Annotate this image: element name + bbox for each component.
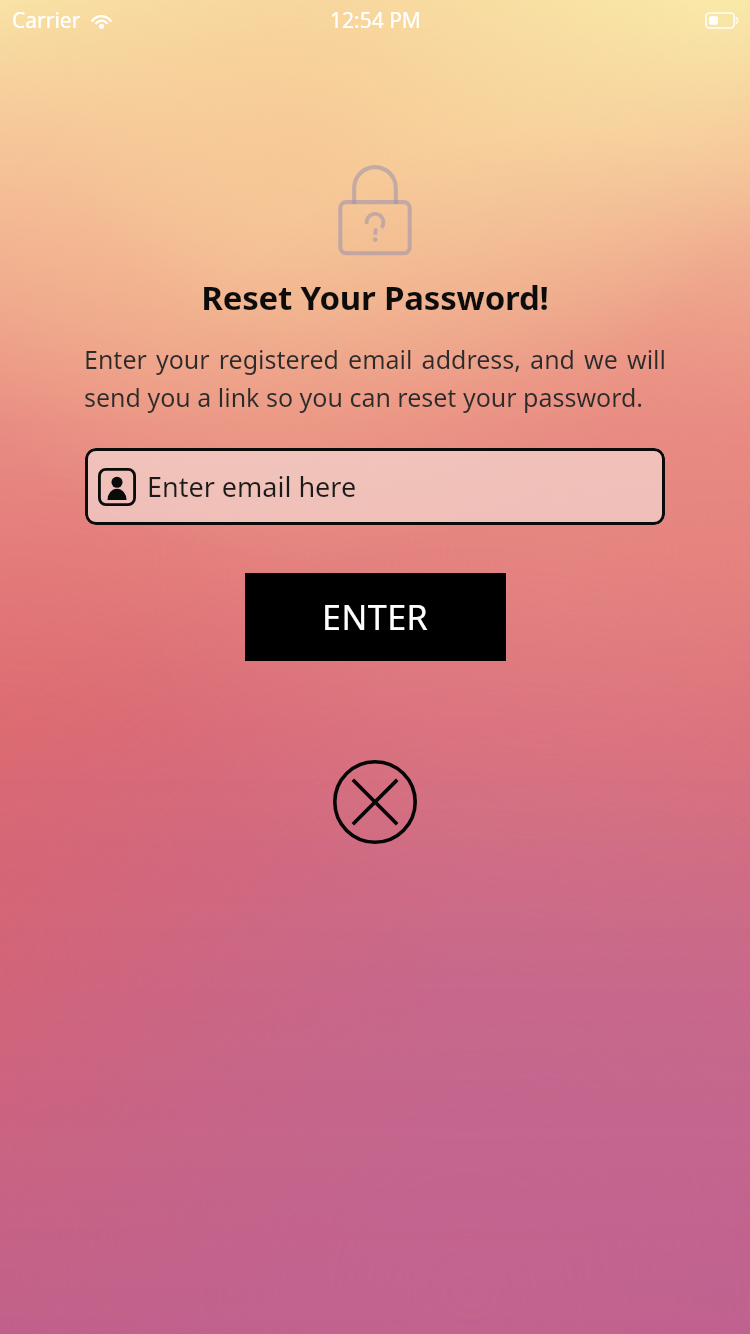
staticText: Carrier <box>12 6 81 35</box>
button[interactable]: Enter email here <box>85 448 665 525</box>
staticText: Reset Your Password! <box>201 275 549 320</box>
staticText: 12:54 PM <box>330 6 421 35</box>
staticText: Enter email here <box>147 468 357 505</box>
staticText: Enter your registered email address, and… <box>84 342 666 414</box>
button[interactable]: Close <box>331 758 419 846</box>
button[interactable]: ENTER <box>245 573 506 661</box>
staticText: ENTER <box>322 594 429 640</box>
